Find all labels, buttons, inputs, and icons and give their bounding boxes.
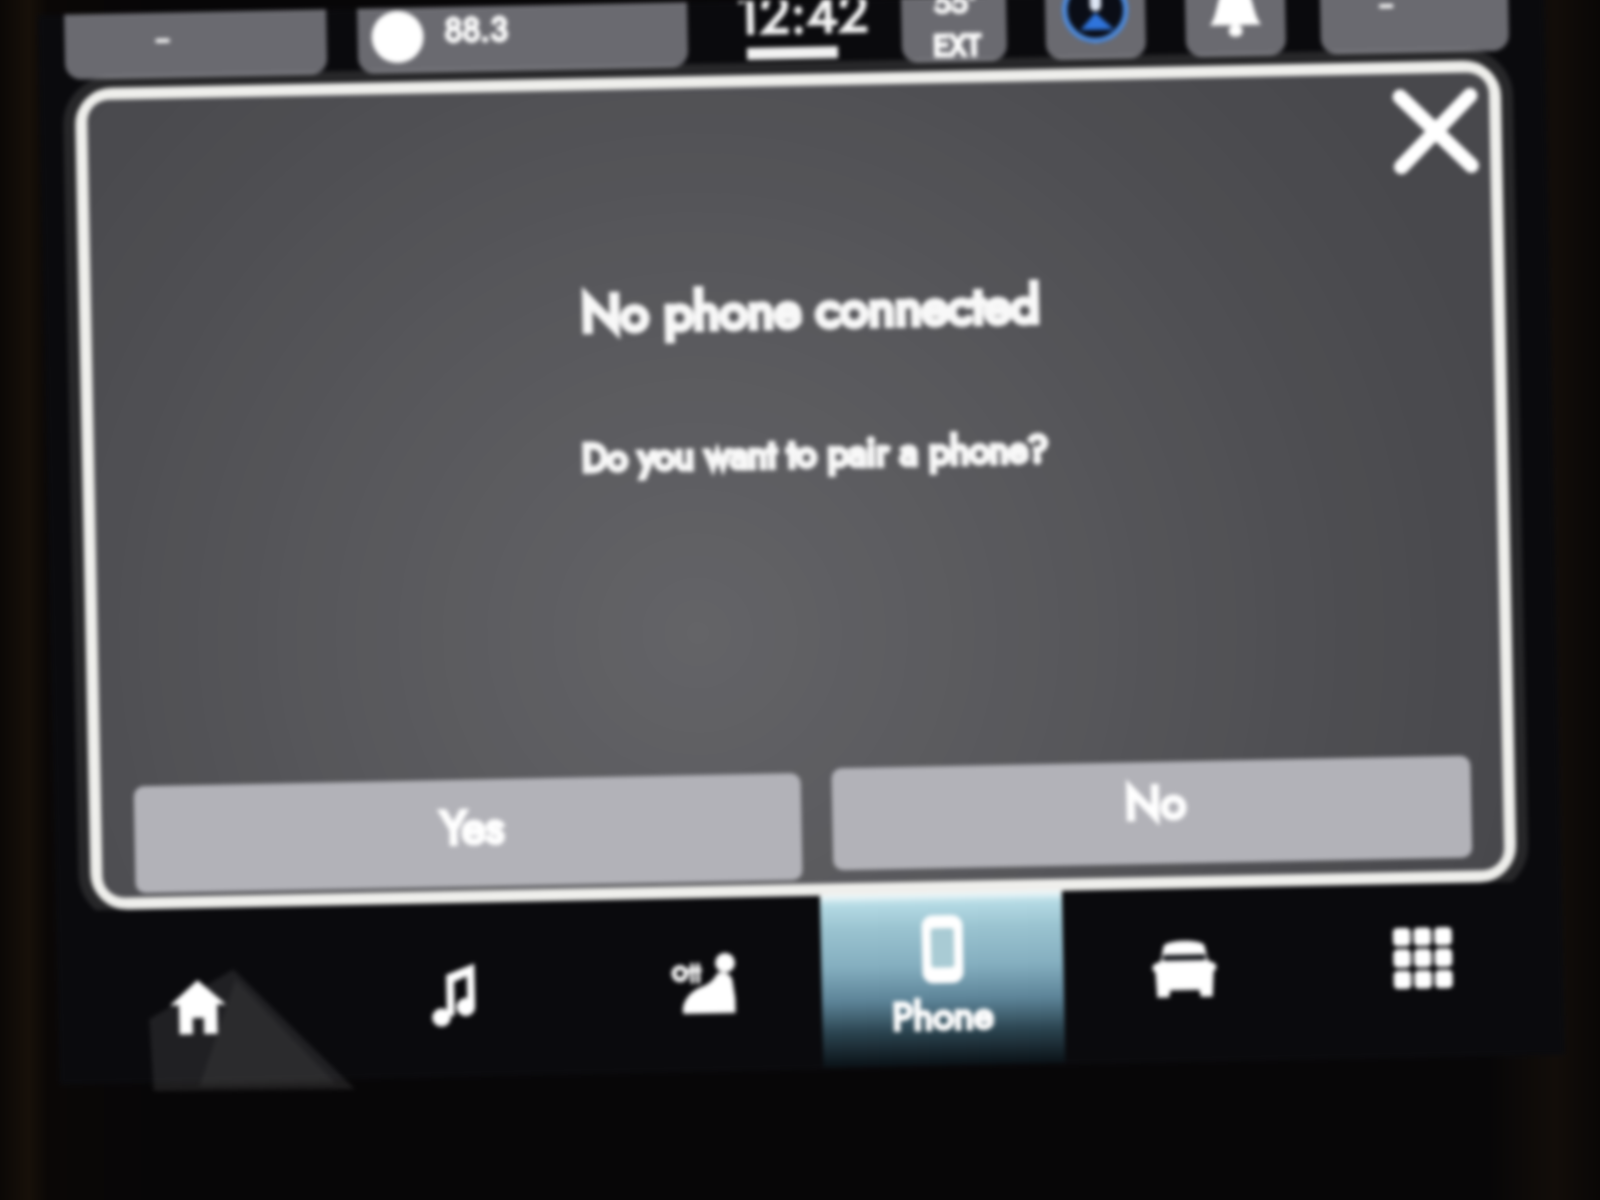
button[interactable]: Phone (820, 891, 1065, 1068)
staticText: -- (1380, 0, 1392, 23)
staticText: -- (1380, 0, 1392, 23)
staticText: Yes (440, 794, 505, 861)
staticText: 55° (934, 0, 977, 24)
staticText: No phone connected (580, 267, 1041, 350)
button[interactable]: Climate (628, 919, 777, 1049)
button[interactable]: 55° (900, 0, 1007, 63)
staticText: No (1124, 769, 1187, 836)
staticText: 12:42 (734, 0, 870, 54)
staticText: -- (156, 18, 169, 58)
staticText: EXT (932, 23, 981, 62)
button[interactable]: Close (1380, 75, 1491, 187)
button[interactable]: Home (129, 947, 267, 1067)
staticText: Phone (892, 987, 995, 1044)
staticText: 88.3 (444, 6, 509, 55)
staticText: 12:42 (734, 0, 870, 54)
staticText: Yes (440, 794, 505, 861)
staticText: 88.3 (444, 6, 509, 55)
button[interactable]: Apps (1352, 894, 1494, 1022)
staticText: Do you want to pair a phone? (582, 422, 1050, 484)
button[interactable]: Yes (134, 773, 803, 893)
staticText: EXT (932, 23, 981, 62)
button[interactable]: 88.3 (356, 0, 688, 74)
staticText: Phone (892, 987, 995, 1044)
staticText: Do you want to pair a phone? (582, 422, 1050, 484)
button[interactable]: Media (388, 931, 519, 1060)
button[interactable]: No (831, 756, 1472, 870)
button[interactable]: -- (63, 0, 327, 80)
button[interactable]: Notifications (1184, 0, 1286, 57)
button[interactable]: Voice control (1044, 0, 1146, 60)
staticText: No (1124, 769, 1187, 836)
staticText: No phone connected (580, 267, 1041, 350)
button[interactable]: Vehicle (1110, 906, 1259, 1032)
staticText: -- (156, 18, 169, 58)
staticText: 55° (934, 0, 977, 24)
button[interactable]: -- (1319, 0, 1509, 54)
